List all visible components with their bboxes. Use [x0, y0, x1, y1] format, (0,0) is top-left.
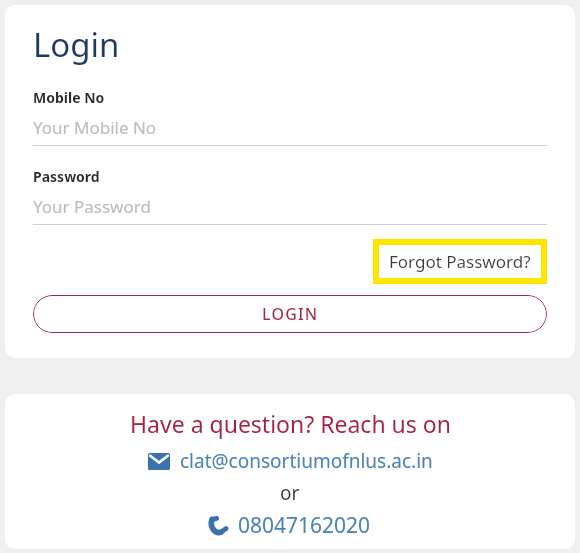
other: Phone: [209, 516, 228, 535]
staticText: clat@consortiumofnlus.ac.in: [180, 448, 433, 474]
staticText: Login: [33, 22, 120, 67]
staticText: or: [280, 480, 300, 506]
button[interactable]: Email: [148, 448, 433, 474]
staticText: 08047162020: [238, 511, 371, 540]
staticText: Password: [33, 167, 100, 186]
button[interactable]: Your Mobile No: [33, 116, 547, 146]
staticText: Your Password: [33, 195, 151, 218]
staticText: Have a question? Reach us on: [130, 408, 451, 439]
button[interactable]: Phone: [209, 511, 371, 540]
button[interactable]: Your Password: [33, 195, 547, 225]
button[interactable]: Forgot Password?: [379, 245, 541, 278]
staticText: LOGIN: [262, 303, 319, 325]
other: Email: [148, 453, 170, 470]
staticText: Forgot Password?: [389, 250, 531, 273]
button[interactable]: LOGIN: [33, 295, 547, 333]
staticText: Your Mobile No: [33, 116, 157, 139]
staticText: Mobile No: [33, 88, 105, 107]
